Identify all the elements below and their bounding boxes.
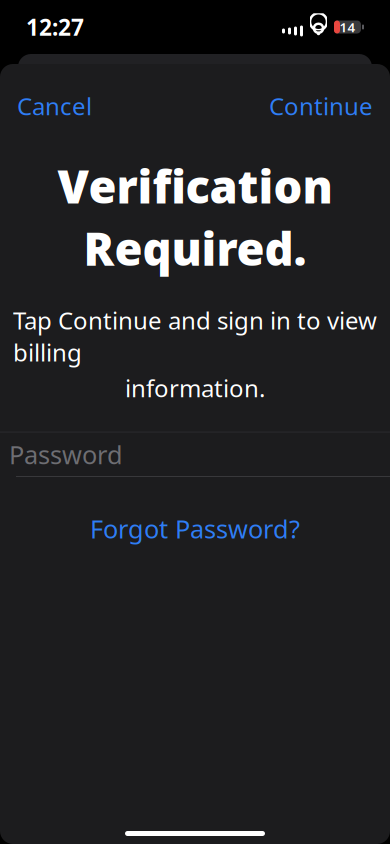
staticText: Forgot Password? <box>90 512 300 545</box>
button[interactable]: Password <box>0 432 390 476</box>
staticText: Continue <box>269 90 373 122</box>
staticText: Cancel <box>17 90 92 122</box>
staticText: Password <box>9 438 123 471</box>
button[interactable]: Forgot Password? <box>74 502 316 555</box>
staticText: Verification <box>57 156 332 216</box>
staticText: Tap Continue and sign in to view billing <box>13 304 377 368</box>
staticText: information. <box>125 372 265 404</box>
staticText: Required. <box>83 218 306 278</box>
staticText: 14 <box>339 18 355 36</box>
button[interactable]: Cancel <box>13 82 96 130</box>
button[interactable]: Continue <box>265 82 377 130</box>
staticText: 12:27 <box>26 12 84 42</box>
